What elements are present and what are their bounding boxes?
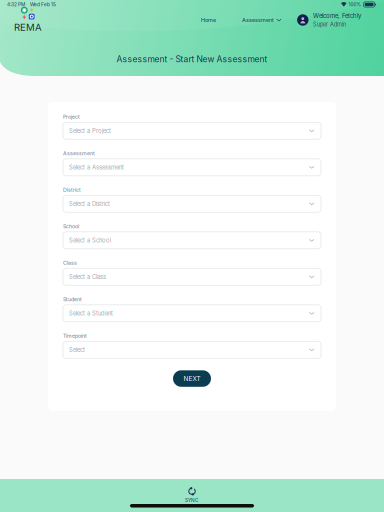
button[interactable]: Assessment: [237, 13, 286, 27]
staticText: Super Admin: [313, 21, 346, 28]
button[interactable]: Select a Project: [63, 122, 321, 139]
staticText: Assessment: [242, 17, 274, 23]
staticText: Wed Feb 15: [30, 2, 56, 7]
staticText: Select a District: [69, 200, 110, 207]
staticText: SYNC: [185, 497, 199, 503]
button[interactable]: Select a District: [63, 195, 321, 212]
staticText: Project: [63, 114, 80, 120]
staticText: Timepoint: [63, 333, 87, 339]
button[interactable]: NEXT: [173, 370, 211, 387]
button[interactable]: Home: [196, 13, 221, 27]
staticText: Select a Student: [69, 310, 113, 317]
staticText: Welcome, Fetchly: [313, 12, 361, 19]
staticText: Home: [201, 17, 216, 23]
staticText: Select a Class: [69, 273, 106, 280]
staticText: Select a Assessment: [69, 164, 124, 171]
staticText: Select a Project: [69, 127, 111, 134]
staticText: School: [63, 223, 79, 230]
button[interactable]: Select a Assessment: [63, 159, 321, 176]
staticText: NEXT: [183, 375, 200, 382]
staticText: Class: [63, 260, 77, 266]
staticText: Assessment: [63, 150, 95, 157]
button[interactable]: Select: [63, 341, 321, 358]
staticText: Student: [63, 296, 82, 303]
staticText: REMA: [14, 21, 42, 33]
staticText: Select a School: [69, 237, 111, 244]
staticText: 100%: [349, 2, 362, 7]
button[interactable]: Sync: [185, 487, 199, 503]
staticText: District: [63, 187, 81, 193]
button[interactable]: Welcome, Fetchly: [297, 12, 361, 28]
button[interactable]: Select a School: [63, 232, 321, 249]
staticText: Select: [69, 346, 85, 353]
staticText: 4:32 PM: [7, 2, 25, 7]
staticText: Assessment - Start New Assessment: [116, 54, 267, 64]
button[interactable]: Select a Student: [63, 305, 321, 322]
button[interactable]: Select a Class: [63, 268, 321, 285]
